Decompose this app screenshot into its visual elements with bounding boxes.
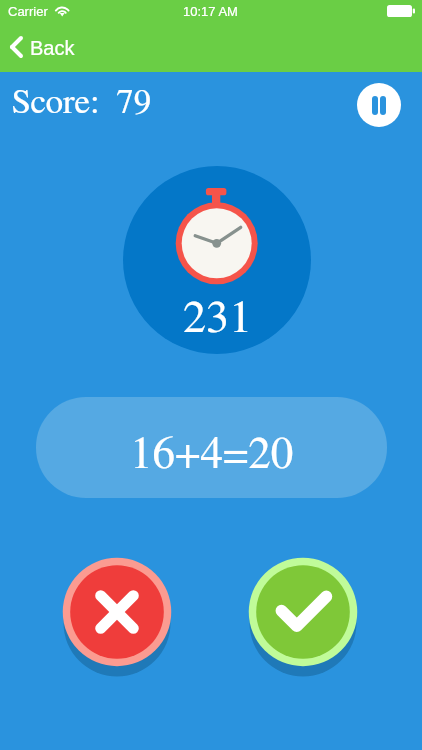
staticText: 10:17 AM [183, 4, 238, 19]
other: Battery full [387, 5, 415, 17]
staticText: 231 [183, 295, 252, 341]
other: Wi-Fi signal [53, 3, 71, 17]
button[interactable]: Pause [357, 83, 401, 127]
button[interactable]: 16+4=20 [36, 397, 387, 498]
button[interactable]: Back [0, 25, 95, 71]
staticText: Back [30, 37, 75, 59]
button[interactable]: Wrong answer [58, 553, 176, 685]
staticText: Score: 79 [12, 85, 152, 120]
staticText: Carrier [8, 4, 48, 19]
button[interactable]: Correct answer [244, 553, 362, 685]
staticText: 16+4=20 [130, 432, 294, 477]
